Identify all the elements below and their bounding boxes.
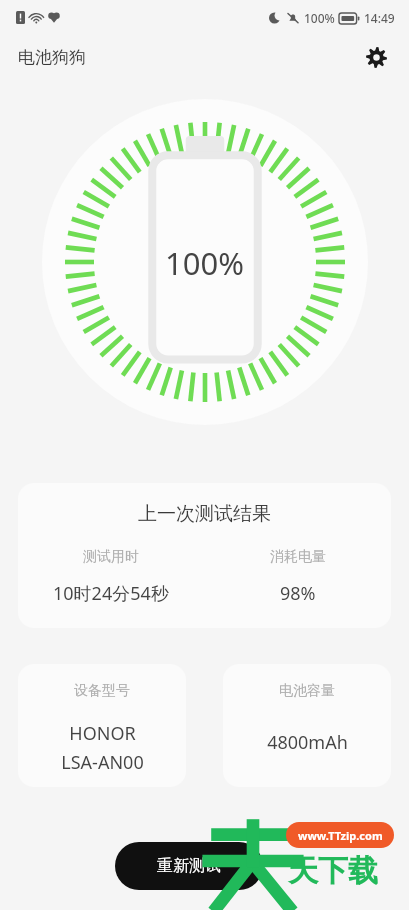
- staticText: HONOR: [69, 721, 136, 746]
- staticText: 10时24分54秒: [53, 581, 169, 606]
- staticText: 重新测试: [157, 856, 221, 876]
- staticText: 98%: [280, 581, 316, 606]
- staticText: 电池容量: [279, 682, 335, 700]
- staticText: 电池狗狗: [18, 47, 86, 68]
- staticText: www.TTzip.com: [298, 828, 383, 843]
- button[interactable]: 设备型号: [18, 664, 186, 787]
- staticText: 消耗电量: [270, 548, 326, 566]
- staticText: 100%: [304, 10, 335, 26]
- staticText: 测试用时: [83, 548, 139, 566]
- staticText: 14:49: [364, 10, 395, 26]
- staticText: 设备型号: [74, 682, 130, 700]
- button[interactable]: 电池容量: [223, 664, 391, 787]
- staticText: 100%: [165, 242, 244, 284]
- button[interactable]: 重新测试: [115, 842, 263, 890]
- staticText: 天下载: [288, 852, 378, 890]
- staticText: 4800mAh: [267, 730, 348, 755]
- staticText: 上一次测试结果: [18, 502, 391, 526]
- button[interactable]: Settings: [356, 37, 396, 77]
- staticText: LSA-AN00: [61, 750, 144, 775]
- button[interactable]: 上一次测试结果: [18, 483, 391, 628]
